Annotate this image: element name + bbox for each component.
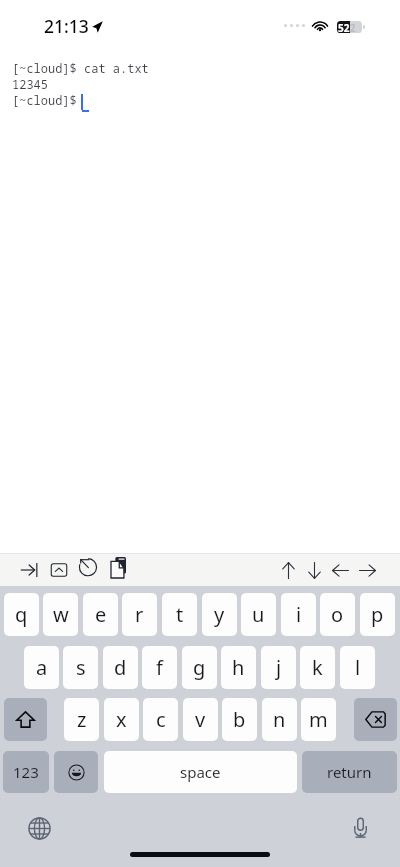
button[interactable]: s [63,646,98,689]
button[interactable]: Backspace [354,698,397,741]
staticText: u [252,601,265,628]
button[interactable]: y [202,593,237,636]
staticText: w [53,601,69,628]
button[interactable]: Arrow up [275,557,301,583]
button[interactable]: space [104,751,297,793]
button[interactable]: Control [46,557,72,583]
staticText: a [36,654,48,681]
staticText: b [233,706,246,733]
staticText: [~cloud]$ cat a.txt [12,60,149,76]
button[interactable]: u [241,593,276,636]
staticText: m [309,706,328,733]
button[interactable]: Arrow right [354,557,380,583]
button[interactable]: a [24,646,59,689]
button[interactable]: w [43,593,78,636]
button[interactable]: 123 [3,751,49,793]
button[interactable]: t [162,593,197,636]
button[interactable]: q [4,593,39,636]
button[interactable]: Tab [17,557,43,583]
staticText: s [76,654,86,681]
staticText: e [95,601,107,628]
staticText: return [327,762,372,782]
button[interactable]: d [103,646,138,689]
staticText: [~cloud]$ [12,92,85,108]
button[interactable]: c [143,698,178,741]
button[interactable]: Undo [75,553,101,579]
button[interactable]: r [122,593,157,636]
staticText: j [276,654,282,681]
button[interactable]: Arrow down [301,557,327,583]
staticText: z [77,706,87,733]
button[interactable]: g [182,646,217,689]
staticText: o [331,601,344,628]
button[interactable]: p [360,593,395,636]
staticText: 123 [13,762,39,782]
staticText: 52 [338,21,350,33]
staticText: i [296,601,302,628]
button[interactable]: f [142,646,177,689]
button[interactable]: x [104,698,139,741]
button[interactable]: e [83,593,118,636]
button[interactable]: Arrow left [327,557,353,583]
button[interactable]: k [300,646,335,689]
button[interactable]: z [64,698,99,741]
button[interactable]: i [281,593,316,636]
staticText: p [371,601,384,628]
button[interactable]: Paste [105,554,131,580]
staticText: 21:13 [44,14,89,38]
staticText: q [15,601,28,628]
staticText: t [176,601,184,628]
button[interactable]: n [262,698,297,741]
button[interactable]: Change keyboard language [27,816,52,841]
button[interactable]: return [302,751,397,793]
button[interactable]: b [222,698,257,741]
staticText: 12345 [12,76,49,92]
staticText: y [214,601,225,628]
staticText: h [232,654,245,681]
staticText: f [156,654,163,681]
button[interactable]: Emoji [54,751,98,793]
staticText: g [193,654,206,681]
staticText: r [135,601,144,628]
staticText: l [355,654,361,681]
button[interactable]: j [261,646,296,689]
staticText: 52 [344,21,356,33]
button[interactable]: o [320,593,355,636]
button[interactable]: Shift [4,698,47,741]
staticText: k [312,654,323,681]
button[interactable]: h [221,646,256,689]
staticText: x [116,706,127,733]
staticText: c [156,706,166,733]
staticText: v [195,706,206,733]
staticText: d [114,654,127,681]
staticText: n [273,706,286,733]
staticText: space [180,762,221,782]
button[interactable]: Dictation [348,815,373,840]
button[interactable]: v [183,698,218,741]
button[interactable]: m [301,698,336,741]
button[interactable]: l [340,646,375,689]
